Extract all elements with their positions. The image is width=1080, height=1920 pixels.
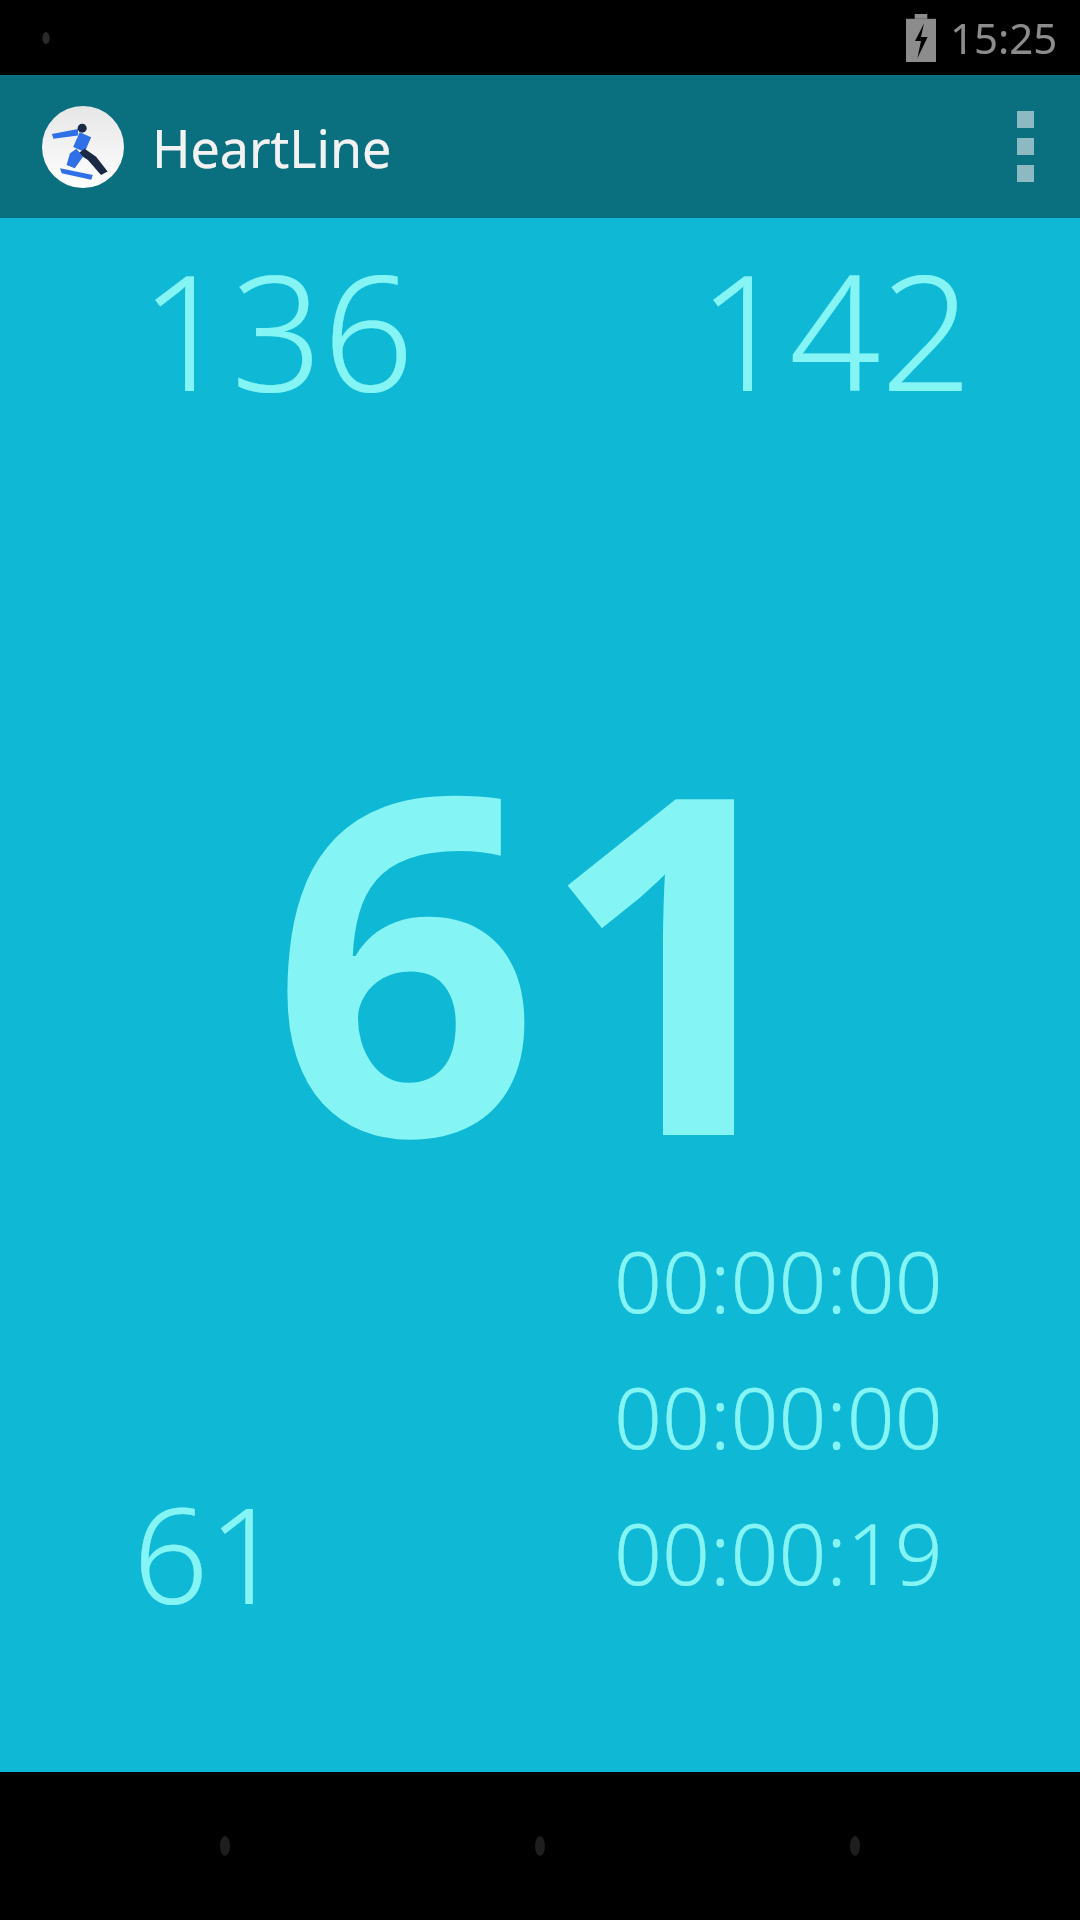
button[interactable]: 00:00:00 [614,1359,943,1473]
button[interactable]: 00:00:19 [614,1495,943,1609]
staticText: HeartLine [152,112,392,183]
button[interactable]: 142 [698,220,973,438]
button[interactable]: 00:00:00 [614,1223,943,1337]
button[interactable]: 61 [271,633,809,1273]
staticText: 15:25 [950,9,1058,66]
button[interactable]: HeartLine app icon [42,106,124,188]
button[interactable]: 136 [140,220,415,438]
button[interactable]: 61 [133,1463,284,1643]
button[interactable]: More options [970,75,1080,218]
